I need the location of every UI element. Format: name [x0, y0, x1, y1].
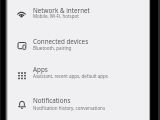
button[interactable] — [6, 59, 149, 89]
staticText: Assistant, recent apps, default apps — [33, 73, 108, 79]
staticText: Bluetooth, pairing — [33, 45, 72, 51]
staticText: Notifications — [33, 96, 71, 105]
button[interactable] — [6, 0, 149, 28]
staticText: Mobile, Wi-Fi, hotspot — [33, 13, 79, 19]
button[interactable] — [6, 90, 149, 120]
staticText: Network & internet — [33, 6, 90, 15]
staticText: Connected devices — [33, 37, 89, 46]
button[interactable] — [6, 29, 149, 59]
staticText: Apps — [33, 65, 48, 74]
staticText: Notification history, conversations — [33, 105, 106, 111]
